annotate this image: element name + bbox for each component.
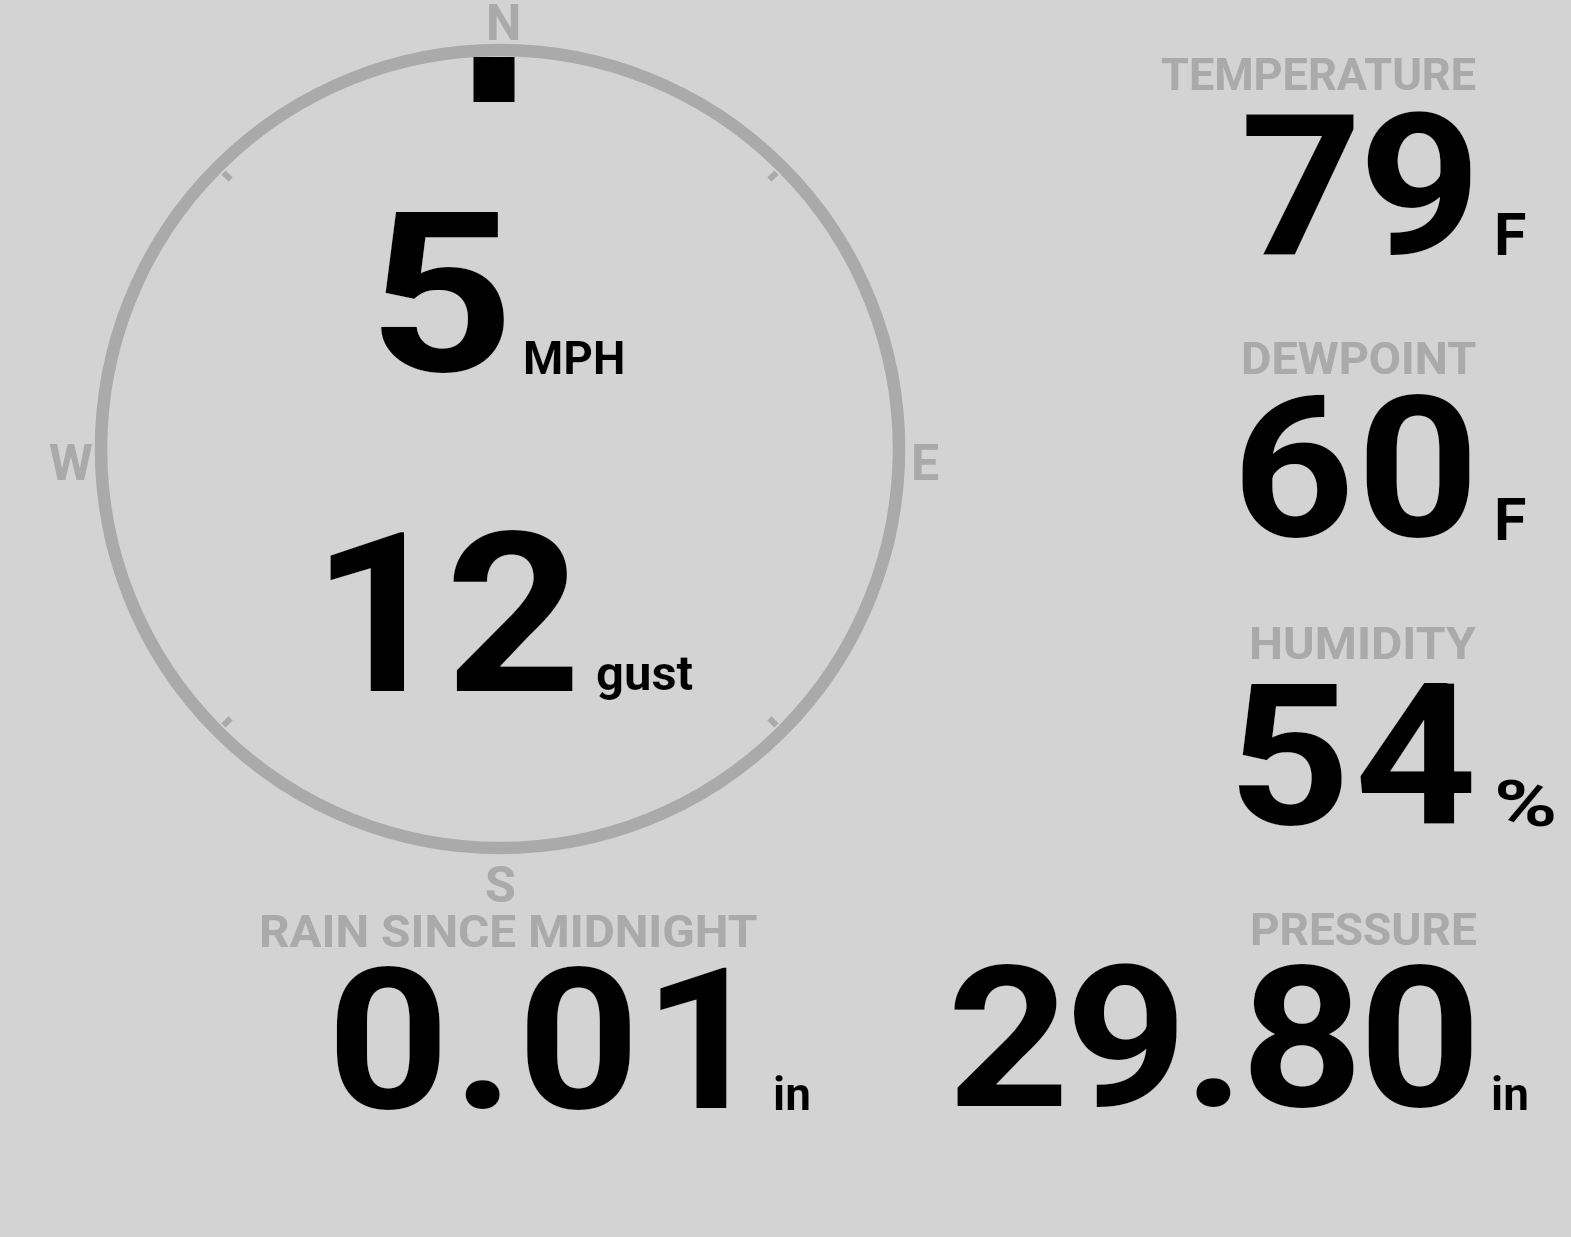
button[interactable]: Wind speed and direction	[94, 44, 906, 856]
button[interactable]: Pressure 29.80 inches	[900, 895, 1540, 1130]
button[interactable]: Humidity 54 percent	[1100, 610, 1571, 840]
button[interactable]: Rain since midnight 0.01 inches	[240, 900, 800, 1130]
button[interactable]: Temperature 79 degrees Fahrenheit	[1100, 40, 1571, 310]
button[interactable]: Dewpoint 60 degrees Fahrenheit	[1100, 320, 1571, 550]
